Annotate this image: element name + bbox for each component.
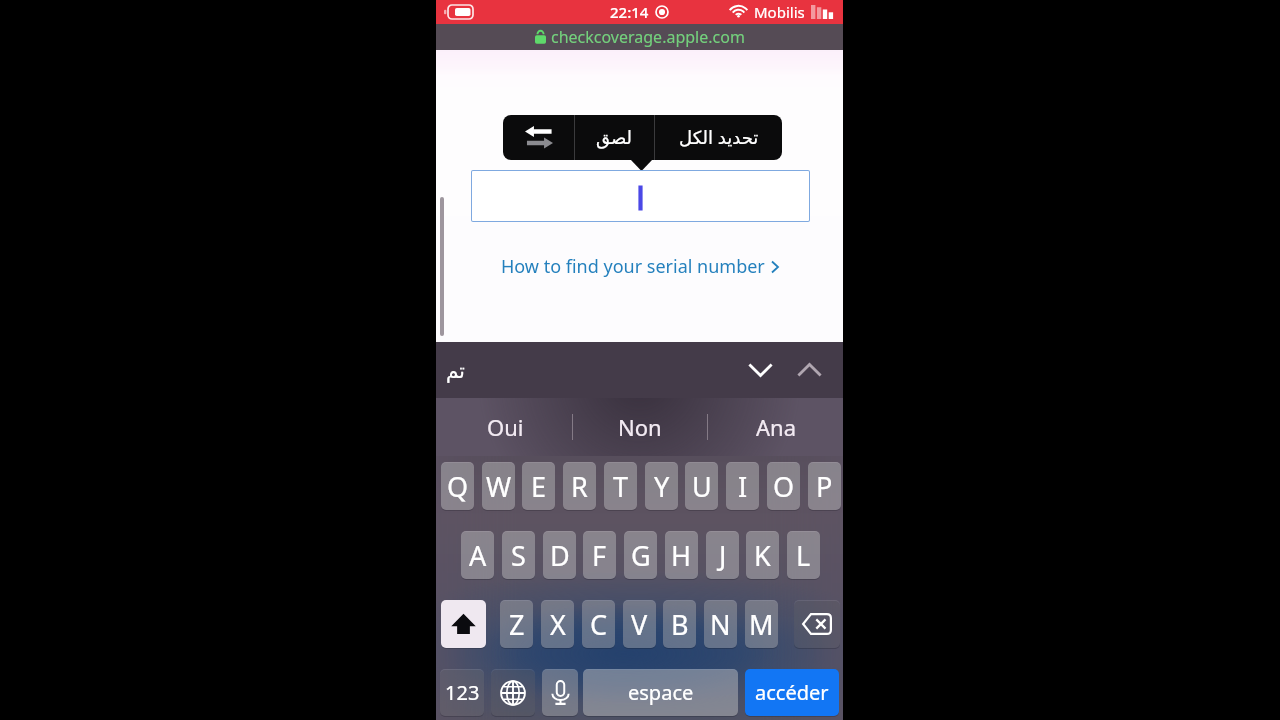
- staticText: Ana: [756, 412, 796, 442]
- button[interactable]: P: [808, 462, 841, 510]
- button[interactable]: accéder: [745, 669, 839, 716]
- staticText: O: [773, 468, 795, 505]
- button[interactable]: H: [665, 531, 698, 579]
- button[interactable]: تم: [446, 359, 465, 382]
- staticText: C: [590, 606, 608, 643]
- staticText: Q: [447, 468, 469, 505]
- button[interactable]: How to find your serial number: [436, 250, 843, 282]
- button[interactable]: Z: [500, 600, 533, 648]
- button[interactable]: G: [624, 531, 657, 579]
- button[interactable]: 123: [440, 669, 484, 716]
- staticText: R: [571, 468, 588, 505]
- button[interactable]: J: [706, 531, 739, 579]
- staticText: M: [749, 606, 774, 643]
- staticText: G: [631, 537, 651, 574]
- staticText: P: [816, 468, 833, 505]
- button[interactable]: Ana: [712, 398, 840, 456]
- button[interactable]: Dictation: [542, 669, 578, 716]
- staticText: Oui: [487, 412, 524, 442]
- button[interactable]: F: [583, 531, 616, 579]
- button[interactable]: Oui: [441, 398, 569, 456]
- button[interactable]: B: [663, 600, 696, 648]
- button[interactable]: لصق: [575, 115, 654, 160]
- button[interactable]: L: [787, 531, 820, 579]
- button[interactable]: A: [461, 531, 494, 579]
- button[interactable]: X: [541, 600, 574, 648]
- button[interactable]: I: [726, 462, 759, 510]
- staticText: D: [550, 537, 570, 574]
- staticText: 123: [445, 679, 480, 706]
- staticText: H: [671, 537, 692, 574]
- button[interactable]: checkcoverage.apple.com: [436, 24, 843, 50]
- staticText: Z: [509, 606, 525, 643]
- staticText: J: [719, 537, 727, 574]
- staticText: U: [692, 468, 712, 505]
- button[interactable]: K: [746, 531, 779, 579]
- staticText: Non: [618, 412, 662, 442]
- button[interactable]: Shift: [441, 600, 486, 648]
- button[interactable]: T: [604, 462, 637, 510]
- staticText: L: [796, 537, 811, 574]
- staticText: S: [511, 537, 526, 574]
- button[interactable]: N: [704, 600, 737, 648]
- staticText: V: [631, 606, 648, 643]
- staticText: T: [613, 468, 629, 505]
- staticText: espace: [628, 679, 694, 706]
- button[interactable]: Y: [645, 462, 678, 510]
- button[interactable]: U: [685, 462, 718, 510]
- button[interactable]: W: [482, 462, 515, 510]
- staticText: Mobilis: [754, 2, 805, 22]
- button[interactable]: M: [745, 600, 778, 648]
- button[interactable]: R: [563, 462, 596, 510]
- staticText: I: [738, 468, 748, 505]
- staticText: How to find your serial number: [501, 254, 765, 279]
- button[interactable]: Previous field: [789, 354, 829, 386]
- button[interactable]: espace: [583, 669, 738, 716]
- button[interactable]: Next field: [740, 354, 780, 386]
- staticText: accéder: [755, 679, 829, 706]
- staticText: E: [531, 468, 547, 505]
- button[interactable]: [471, 170, 810, 222]
- button[interactable]: D: [543, 531, 576, 579]
- button[interactable]: Change language: [491, 669, 535, 716]
- button[interactable]: O: [767, 462, 800, 510]
- staticText: B: [671, 606, 689, 643]
- button[interactable]: Undo / Redo: [503, 115, 574, 160]
- button[interactable]: Non: [576, 398, 704, 456]
- staticText: Y: [654, 468, 670, 505]
- button[interactable]: S: [502, 531, 535, 579]
- button[interactable]: V: [623, 600, 656, 648]
- staticText: checkcoverage.apple.com: [551, 26, 745, 48]
- staticText: K: [754, 537, 771, 574]
- staticText: 22:14: [610, 2, 649, 22]
- staticText: تحديد الكل: [679, 125, 759, 150]
- staticText: تم: [446, 359, 465, 382]
- staticText: A: [469, 537, 487, 574]
- staticText: F: [592, 537, 607, 574]
- staticText: N: [710, 606, 731, 643]
- button[interactable]: Backspace: [794, 600, 840, 648]
- button[interactable]: E: [522, 462, 555, 510]
- staticText: W: [486, 468, 512, 505]
- staticText: لصق: [596, 127, 633, 148]
- button[interactable]: C: [582, 600, 615, 648]
- button[interactable]: Q: [441, 462, 474, 510]
- staticText: X: [550, 606, 566, 643]
- button[interactable]: تحديد الكل: [655, 115, 782, 160]
